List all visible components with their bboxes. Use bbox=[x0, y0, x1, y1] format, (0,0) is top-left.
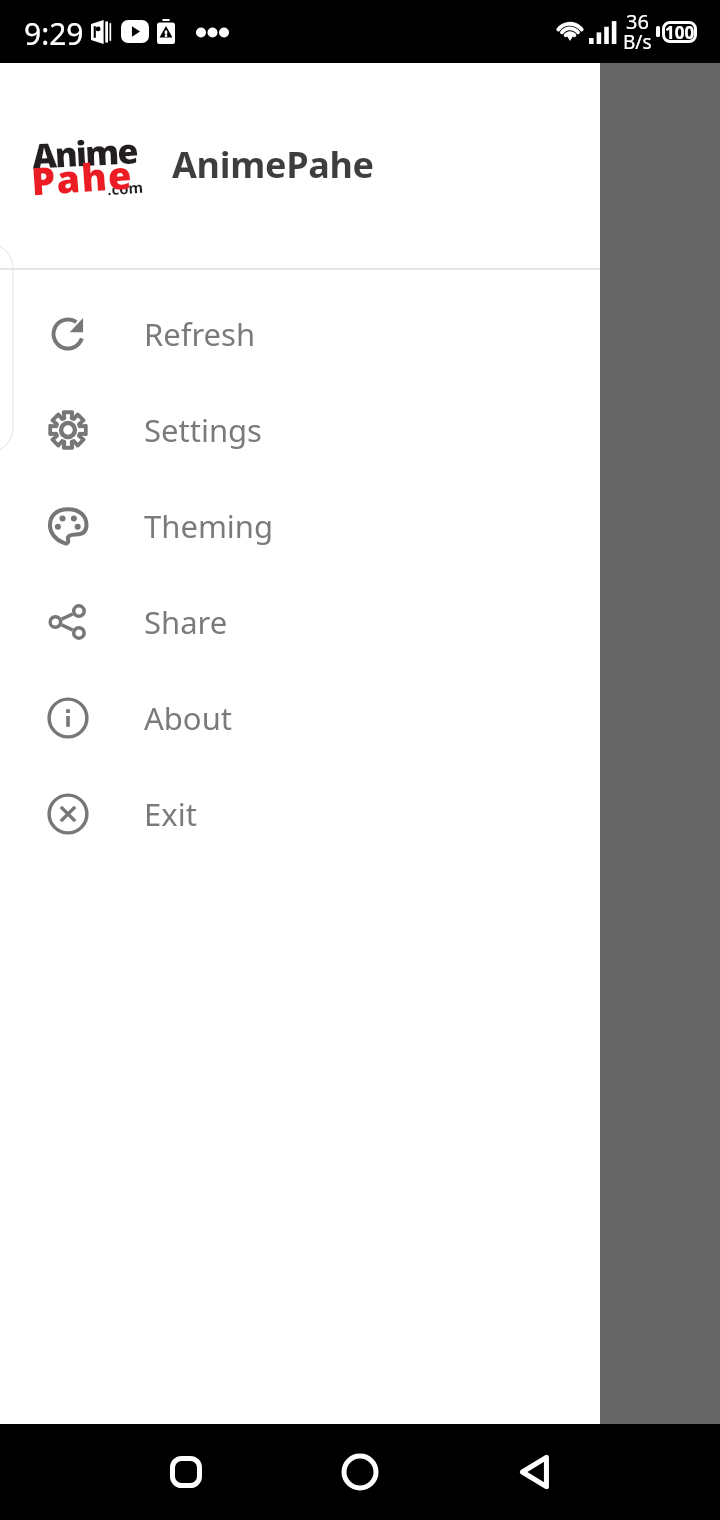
staticText: Refresh bbox=[144, 313, 256, 355]
staticText: About bbox=[144, 697, 232, 739]
button[interactable]: Settings bbox=[0, 382, 600, 478]
staticText: Theming bbox=[144, 505, 274, 547]
button[interactable]: Refresh bbox=[0, 286, 600, 382]
staticText: Anime bbox=[31, 127, 138, 179]
button[interactable]: Theming bbox=[0, 478, 600, 574]
staticText: B/s bbox=[623, 29, 652, 51]
staticText: Exit bbox=[144, 793, 197, 835]
button[interactable]: Back bbox=[513, 1450, 557, 1494]
staticText: Pahe bbox=[29, 147, 135, 206]
staticText: AnimePahe bbox=[172, 140, 374, 189]
staticText: 9:29 bbox=[24, 13, 84, 54]
staticText: .com bbox=[106, 177, 144, 199]
button[interactable]: About bbox=[0, 670, 600, 766]
staticText: Share bbox=[144, 601, 228, 643]
button[interactable]: Share bbox=[0, 574, 600, 670]
staticText: 100 bbox=[665, 21, 695, 43]
button[interactable]: Home bbox=[338, 1450, 382, 1494]
button[interactable]: Recent apps bbox=[164, 1450, 208, 1494]
button[interactable]: Exit bbox=[0, 766, 600, 862]
staticText: Settings bbox=[144, 409, 262, 451]
staticText: 36 bbox=[626, 8, 649, 30]
button[interactable]: Close navigation drawer bbox=[0, 63, 720, 1424]
